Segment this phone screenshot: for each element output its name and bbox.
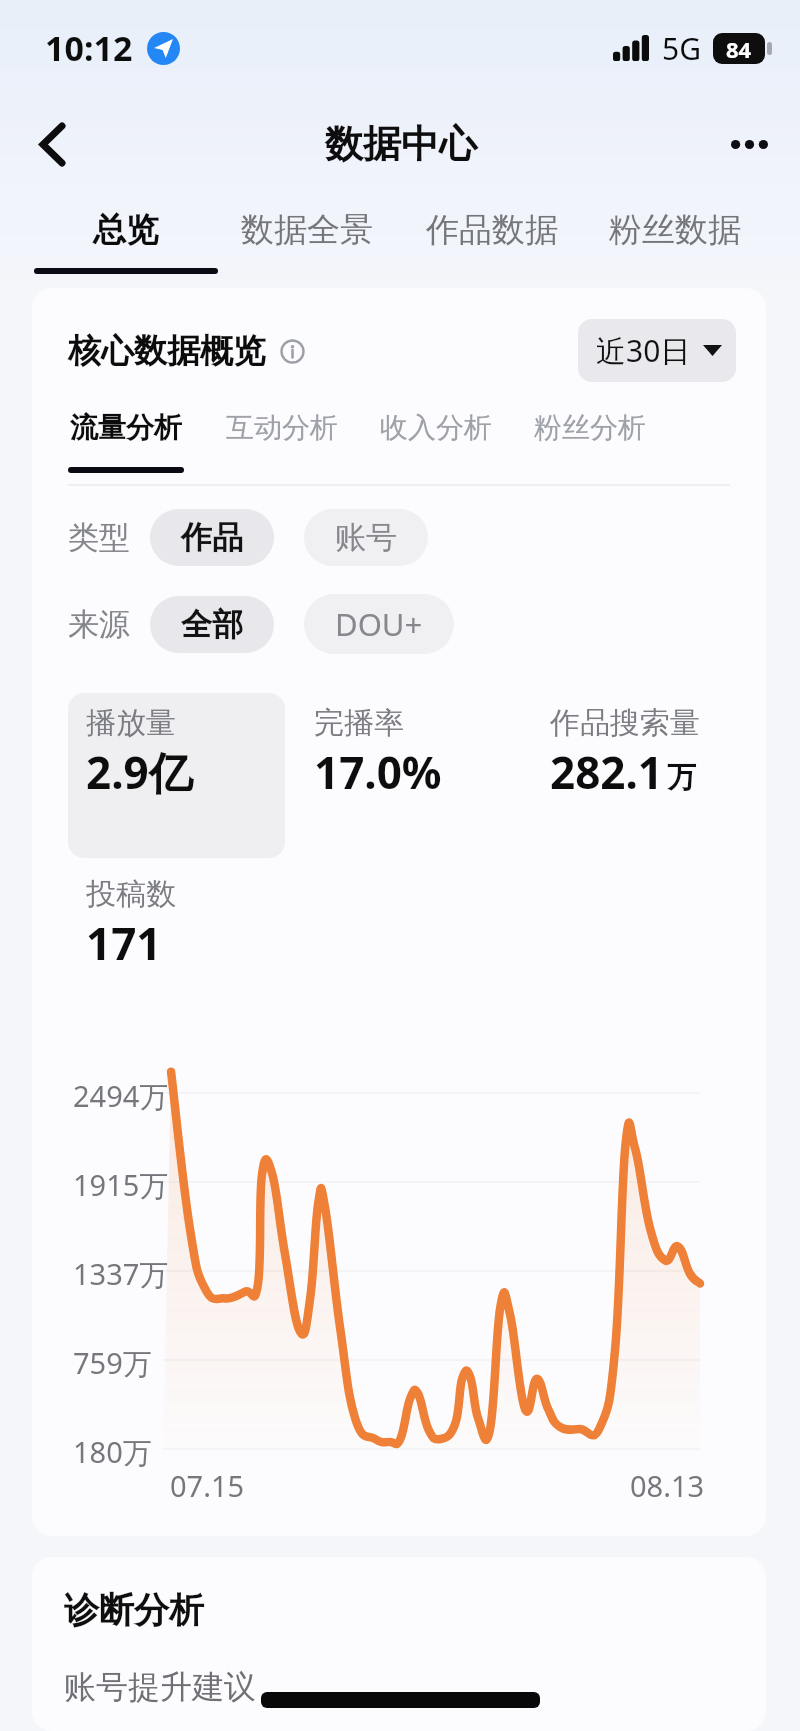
staticText: 282.1 — [550, 742, 664, 802]
staticText: 来源 — [68, 605, 130, 644]
button[interactable]: 收入分析 — [380, 410, 492, 445]
staticText: 作品 — [181, 518, 243, 557]
staticText: 流量分析 — [70, 410, 182, 445]
staticText: 180万 — [73, 1432, 152, 1472]
staticText: 诊断分析 — [64, 1588, 204, 1632]
staticText: DOU+ — [335, 603, 423, 645]
staticText: 收入分析 — [380, 410, 492, 445]
staticText: 粉丝数据 — [609, 209, 741, 251]
button[interactable]: 总览 — [34, 196, 218, 278]
staticText: 84 — [726, 34, 752, 64]
button[interactable]: 互动分析 — [226, 410, 338, 445]
button[interactable]: More options — [698, 104, 800, 184]
staticText: 17.0% — [314, 742, 442, 802]
staticText: 数据中心 — [325, 120, 477, 168]
staticText: 账号提升建议 — [64, 1667, 256, 1707]
button[interactable]: 数据全景 — [215, 196, 399, 278]
staticText: 数据全景 — [241, 209, 373, 251]
button[interactable]: 作品数据 — [400, 196, 584, 278]
staticText: 万 — [667, 759, 696, 796]
staticText: 粉丝分析 — [534, 410, 646, 445]
button[interactable]: 近30日 — [578, 319, 736, 382]
button[interactable]: 流量分析 — [70, 410, 182, 445]
staticText: 全部 — [181, 605, 243, 644]
staticText: 亿 — [149, 747, 193, 802]
staticText: 近30日 — [596, 330, 691, 371]
staticText: 总览 — [93, 209, 159, 251]
staticText: 5G — [662, 28, 701, 69]
staticText: 作品搜索量 — [550, 704, 700, 742]
button[interactable]: 粉丝数据 — [583, 196, 767, 278]
button[interactable]: Back — [0, 104, 104, 184]
staticText: 2.9 — [86, 742, 149, 802]
staticText: 核心数据概览 — [68, 330, 266, 372]
staticText: 账号 — [335, 518, 397, 557]
staticText: 1337万 — [73, 1254, 169, 1294]
button[interactable]: 作品搜索量 — [532, 693, 749, 858]
button[interactable]: 账号 — [304, 509, 428, 566]
staticText: 07.15 — [170, 1466, 245, 1505]
staticText: 播放量 — [86, 704, 176, 742]
staticText: 互动分析 — [226, 410, 338, 445]
button[interactable]: 粉丝分析 — [534, 410, 646, 445]
staticText: 759万 — [73, 1343, 152, 1383]
button[interactable]: DOU+ — [304, 594, 454, 654]
button[interactable]: 完播率 — [296, 693, 513, 858]
staticText: 类型 — [68, 518, 130, 557]
button[interactable]: 作品 — [150, 509, 274, 566]
staticText: 1915万 — [73, 1165, 169, 1205]
button[interactable]: 播放量 — [68, 693, 285, 858]
button[interactable]: 投稿数 — [68, 864, 285, 1029]
staticText: 投稿数 — [86, 875, 176, 913]
staticText: 2494万 — [73, 1076, 169, 1116]
staticText: 10:12 — [45, 25, 133, 71]
staticText: 08.13 — [630, 1466, 705, 1505]
staticText: 171 — [86, 913, 162, 973]
button[interactable]: 全部 — [150, 596, 274, 653]
button[interactable]: Info — [278, 337, 306, 365]
staticText: 作品数据 — [426, 209, 558, 251]
staticText: 完播率 — [314, 704, 404, 742]
